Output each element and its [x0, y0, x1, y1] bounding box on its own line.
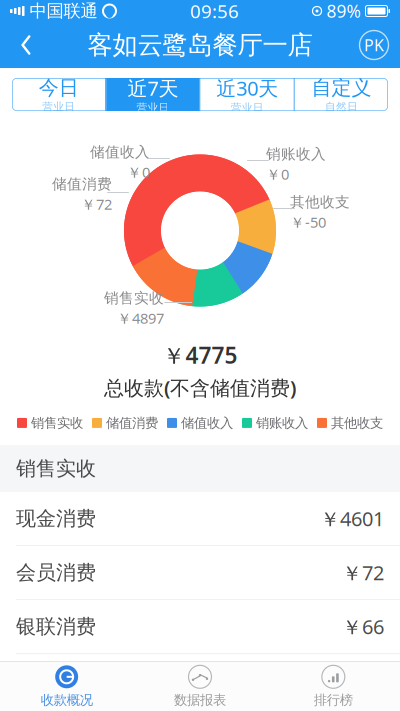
- staticText: 营业日: [136, 101, 169, 114]
- staticText: 会员消费: [16, 560, 96, 585]
- button[interactable]: 收款概况: [0, 662, 133, 711]
- staticText: 储值消费: [52, 175, 112, 193]
- staticText: 自然日: [325, 100, 358, 113]
- staticText: 客如云鹭岛餐厅一店: [87, 29, 312, 60]
- staticText: ￥-50: [290, 212, 326, 232]
- staticText: 收款概况: [41, 692, 93, 708]
- staticText: 销账收入: [256, 415, 308, 431]
- staticText: ￥4601: [320, 505, 384, 532]
- staticText: 自定义: [311, 76, 371, 100]
- staticText: 营业日: [42, 100, 75, 113]
- staticText: 营业日: [231, 101, 264, 114]
- staticText: 近30天: [216, 75, 278, 101]
- staticText: 销售实收: [31, 415, 83, 431]
- staticText: 89%: [326, 0, 360, 22]
- staticText: 储值收入: [90, 143, 150, 161]
- staticText: PK: [364, 34, 384, 56]
- button[interactable]: 银联消费: [0, 600, 400, 653]
- staticText: ￥0: [127, 162, 150, 182]
- staticText: 储值收入: [181, 415, 233, 431]
- staticText: 近7天: [127, 75, 178, 101]
- button[interactable]: 数据报表: [133, 662, 267, 711]
- staticText: 银联消费: [16, 614, 96, 639]
- staticText: 中国联通: [29, 0, 97, 22]
- button[interactable]: 今日: [12, 78, 105, 111]
- staticText: 排行榜: [314, 692, 353, 708]
- staticText: 其他收支: [290, 193, 350, 211]
- staticText: 今日: [39, 76, 79, 100]
- staticText: ￥72: [342, 559, 384, 586]
- button[interactable]: 现金消费: [0, 492, 400, 545]
- button[interactable]: 排行榜: [267, 662, 400, 711]
- staticText: ￥0: [266, 164, 289, 184]
- staticText: 销售实收: [16, 456, 96, 481]
- staticText: 储值消费: [106, 415, 158, 431]
- button[interactable]: 返回: [0, 22, 52, 68]
- staticText: 销账收入: [266, 145, 326, 163]
- button[interactable]: 会员消费: [0, 546, 400, 599]
- staticText: 其他收支: [331, 415, 383, 431]
- button[interactable]: 近30天: [200, 78, 294, 111]
- staticText: 销售实收: [104, 289, 164, 307]
- button[interactable]: 自定义: [295, 78, 388, 111]
- staticText: ￥72: [81, 194, 112, 214]
- staticText: ￥4775: [162, 340, 237, 370]
- button[interactable]: 用户 PK: [348, 22, 400, 68]
- staticText: 现金消费: [16, 506, 96, 531]
- button[interactable]: 近7天: [106, 78, 199, 111]
- staticText: 数据报表: [174, 692, 226, 708]
- staticText: 09:56: [190, 0, 239, 23]
- staticText: ￥4897: [117, 308, 164, 328]
- staticText: ￥66: [342, 613, 384, 640]
- staticText: 总收款(不含储值消费): [104, 374, 296, 401]
